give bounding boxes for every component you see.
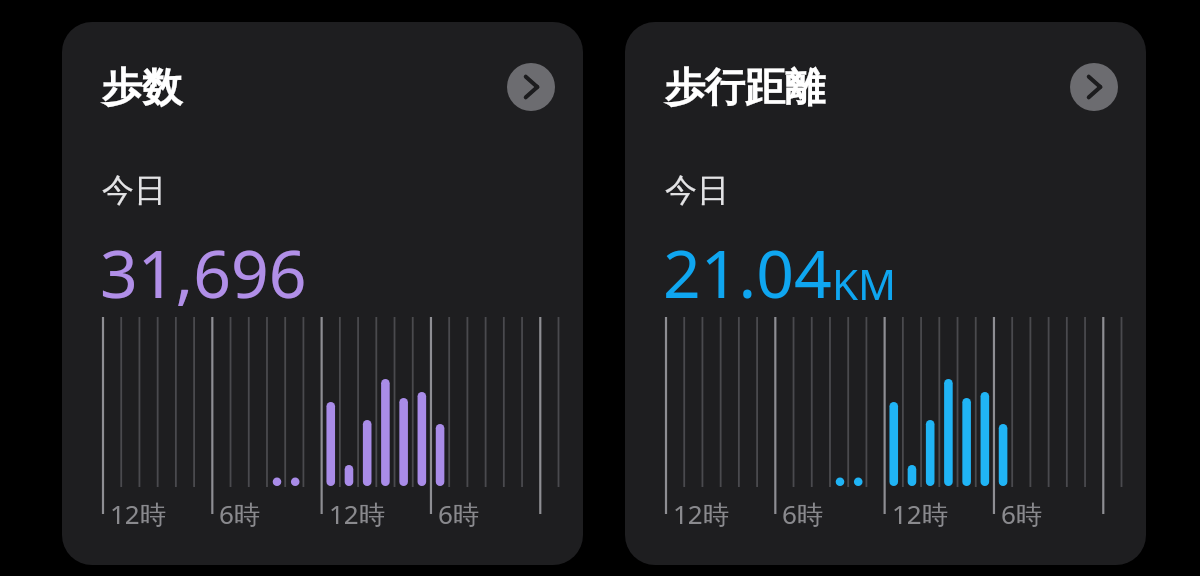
staticText: 31,696 xyxy=(100,227,307,317)
staticText: 12時 xyxy=(329,496,385,532)
staticText: 歩数 xyxy=(102,62,182,112)
staticText: 12時 xyxy=(673,496,729,532)
staticText: 6時 xyxy=(1001,496,1042,532)
staticText: 21.04 xyxy=(663,227,832,317)
button[interactable]: 歩数 の詳細を表示 xyxy=(507,63,555,111)
button[interactable]: 歩行距離 の詳細を表示 xyxy=(1070,63,1118,111)
staticText: 6時 xyxy=(782,496,823,532)
staticText: 今日 xyxy=(665,170,729,210)
button[interactable]: 歩行距離 xyxy=(625,22,1146,565)
staticText: 12時 xyxy=(110,496,166,532)
staticText: 12時 xyxy=(892,496,948,532)
staticText: 6時 xyxy=(438,496,479,532)
staticText: 歩行距離 xyxy=(665,62,825,112)
staticText: KM xyxy=(832,255,897,312)
staticText: 6時 xyxy=(219,496,260,532)
button[interactable]: 歩数 xyxy=(62,22,583,565)
staticText: 今日 xyxy=(102,170,166,210)
